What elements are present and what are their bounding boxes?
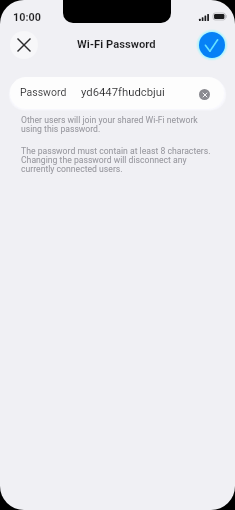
button[interactable]: Close [10, 31, 38, 59]
staticText: yd6447fhudcbjui [81, 86, 165, 99]
staticText: The password must contain at least 8 cha… [21, 147, 217, 174]
staticText: Password [20, 86, 67, 98]
staticText: Wi-Fi Password [77, 38, 156, 51]
button[interactable]: Password [10, 77, 224, 109]
button[interactable]: Clear text [199, 89, 210, 100]
button[interactable]: Done [199, 32, 225, 58]
staticText: Other users will join your shared Wi-Fi … [21, 116, 217, 134]
staticText: 10:00 [13, 11, 41, 24]
